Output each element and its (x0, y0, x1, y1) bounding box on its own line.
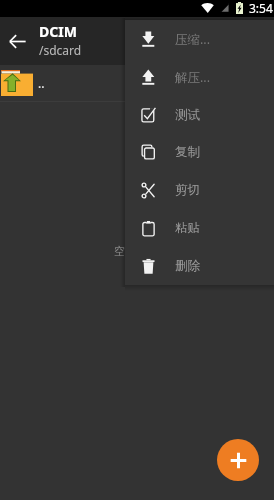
staticText: 压缩... (175, 31, 211, 48)
staticText: 复制 (175, 144, 200, 160)
button[interactable]: 剪切 (125, 171, 274, 209)
staticText: 删除 (175, 258, 200, 274)
staticText: 空 (114, 244, 125, 258)
button[interactable]: 粘贴 (125, 209, 274, 247)
button[interactable]: 复制 (125, 133, 274, 171)
button[interactable]: Back (0, 24, 35, 59)
button[interactable]: .. (0, 65, 274, 101)
button[interactable]: 测试 (125, 96, 274, 134)
staticText: DCIM (39, 22, 77, 41)
button[interactable]: Add (217, 439, 259, 481)
staticText: .. (38, 75, 45, 91)
staticText: /sdcard (39, 42, 82, 58)
staticText: 解压... (175, 69, 211, 86)
button[interactable]: 删除 (125, 247, 274, 285)
staticText: 粘贴 (175, 220, 200, 236)
button[interactable]: 压缩... (125, 20, 274, 58)
staticText: 3:54 (249, 0, 273, 16)
button[interactable]: 解压... (125, 58, 274, 96)
staticText: 剪切 (175, 182, 200, 198)
staticText: 测试 (175, 107, 200, 123)
